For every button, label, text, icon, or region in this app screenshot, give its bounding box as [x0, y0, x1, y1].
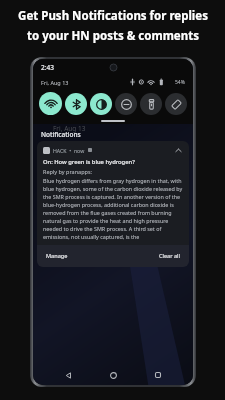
- button[interactable]: Manage: [44, 250, 70, 262]
- staticText: Blue hydrogen differs from gray hydrogen…: [43, 177, 183, 241]
- button[interactable]: Recent apps: [148, 365, 168, 385]
- button[interactable]: Do Not Disturb: [115, 93, 137, 115]
- staticText: Fri, Aug 13: [41, 79, 69, 86]
- staticText: to your HN posts & comments: [27, 28, 199, 44]
- button[interactable]: Collapse notification: [173, 145, 183, 155]
- staticText: HACK • now: [53, 147, 85, 154]
- button[interactable]: Back: [58, 365, 78, 385]
- staticText: Reply by pranapps:: [43, 168, 93, 175]
- button[interactable]: Flashlight: [140, 93, 162, 115]
- staticText: Notifications: [41, 130, 81, 139]
- button[interactable]: Bluetooth: [65, 93, 87, 115]
- staticText: Clear all: [158, 252, 180, 260]
- staticText: Get Push Notifications for replies: [18, 8, 208, 24]
- button[interactable]: Clear all: [156, 250, 182, 262]
- staticText: On: How green is blue hydrogen?: [43, 158, 135, 166]
- staticText: Manage: [46, 252, 68, 260]
- staticText: 2:43: [41, 63, 54, 72]
- button[interactable]: Dark theme: [90, 93, 112, 115]
- staticText: Fri, Aug 13: [53, 124, 86, 133]
- button[interactable]: Home: [103, 365, 123, 385]
- button[interactable]: Auto rotate: [165, 93, 187, 115]
- button[interactable]: HACK • now: [37, 141, 189, 245]
- staticText: 54%: [175, 79, 185, 86]
- button[interactable]: Wi-Fi: [39, 92, 62, 115]
